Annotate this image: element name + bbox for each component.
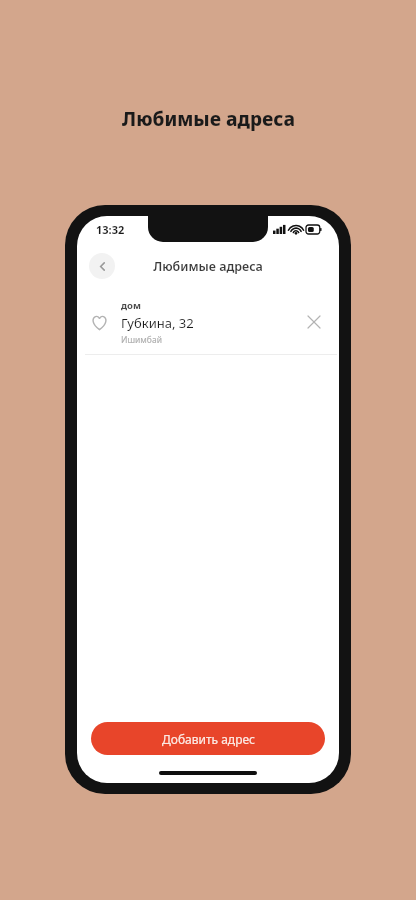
- staticText: Любимые адреса: [153, 258, 263, 275]
- staticText: 13:32: [96, 222, 125, 237]
- button[interactable]: Добавить адрес: [91, 722, 325, 755]
- button[interactable]: Back: [89, 253, 115, 279]
- staticText: Добавить адрес: [162, 731, 255, 747]
- staticText: дом: [121, 299, 141, 312]
- button[interactable]: Remove address: [297, 305, 331, 339]
- button[interactable]: дом: [77, 290, 339, 354]
- staticText: Любимые адреса: [122, 106, 295, 132]
- staticText: Губкина, 32: [121, 314, 194, 332]
- staticText: Ишимбай: [121, 334, 162, 346]
